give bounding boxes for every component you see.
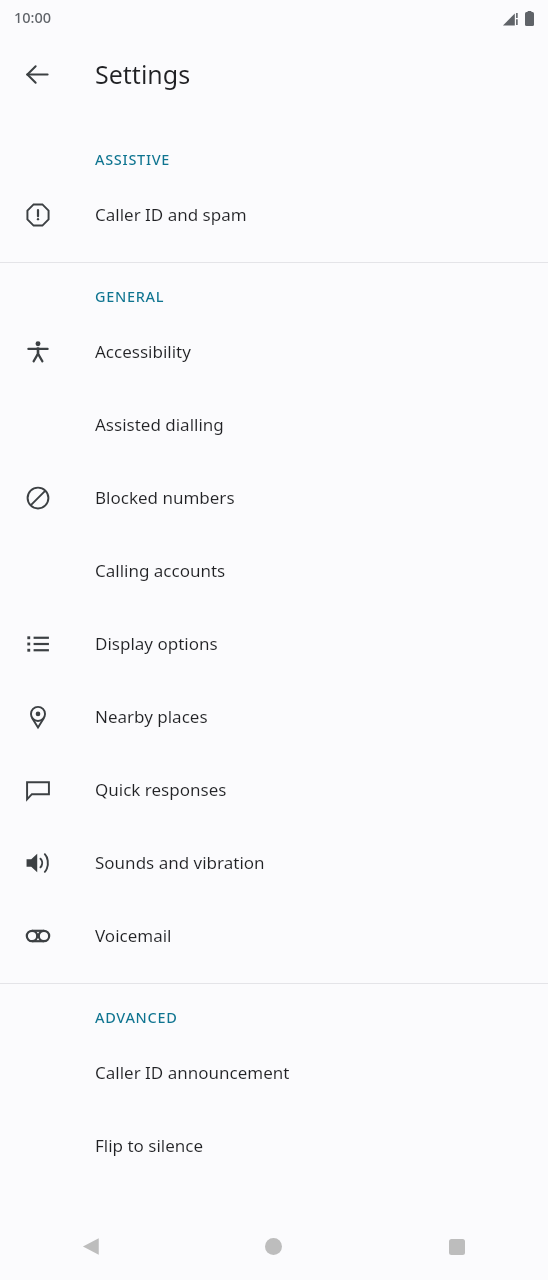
- staticText: ADVANCED: [95, 1007, 178, 1027]
- staticText: Flip to silence: [95, 1134, 204, 1157]
- staticText: 10:00: [14, 7, 52, 27]
- staticText: Display options: [95, 632, 218, 655]
- button[interactable]: Blocked numbers: [0, 461, 548, 534]
- button[interactable]: Voicemail: [0, 899, 548, 972]
- button[interactable]: Accessibility: [0, 315, 548, 388]
- button[interactable]: Back: [13, 50, 61, 98]
- button[interactable]: Display options: [0, 607, 548, 680]
- button[interactable]: Quick responses: [0, 753, 548, 826]
- button[interactable]: Nearby places: [0, 680, 548, 753]
- button[interactable]: Back: [0, 1213, 182, 1280]
- staticText: Caller ID and spam: [95, 203, 247, 226]
- staticText: Quick responses: [95, 778, 227, 801]
- button[interactable]: Recent apps: [365, 1213, 548, 1280]
- button[interactable]: Calling accounts: [0, 534, 548, 607]
- staticText: Sounds and vibration: [95, 851, 265, 874]
- button[interactable]: Home: [182, 1213, 365, 1280]
- button[interactable]: Sounds and vibration: [0, 826, 548, 899]
- staticText: Nearby places: [95, 705, 208, 728]
- staticText: Assisted dialling: [95, 413, 224, 436]
- staticText: Blocked numbers: [95, 486, 235, 509]
- button[interactable]: Assisted dialling: [0, 388, 548, 461]
- staticText: ASSISTIVE: [95, 149, 171, 169]
- button[interactable]: Caller ID and spam: [0, 178, 548, 251]
- staticText: Caller ID announcement: [95, 1061, 290, 1084]
- button[interactable]: Caller ID announcement: [0, 1036, 548, 1109]
- staticText: Calling accounts: [95, 559, 226, 582]
- staticText: Accessibility: [95, 340, 191, 363]
- staticText: GENERAL: [95, 286, 165, 306]
- staticText: Settings: [95, 57, 191, 91]
- staticText: Voicemail: [95, 924, 172, 947]
- button[interactable]: Flip to silence: [0, 1109, 548, 1182]
